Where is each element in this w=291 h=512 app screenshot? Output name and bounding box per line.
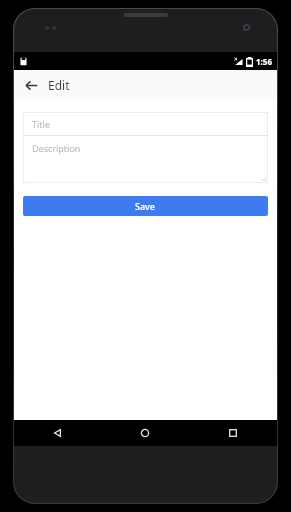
button[interactable]: Home bbox=[101, 420, 189, 446]
button[interactable]: Description bbox=[23, 136, 268, 183]
button[interactable]: Back bbox=[14, 420, 101, 446]
staticText: 1:56 bbox=[256, 56, 272, 67]
button[interactable]: Recent apps bbox=[189, 420, 277, 446]
button[interactable]: Title bbox=[23, 112, 268, 135]
staticText: Save bbox=[135, 200, 156, 212]
staticText: Description bbox=[32, 142, 81, 154]
staticText: Edit bbox=[48, 77, 70, 93]
button[interactable]: Save bbox=[23, 196, 268, 216]
button[interactable]: Back bbox=[18, 72, 44, 98]
staticText: Title bbox=[32, 118, 50, 130]
